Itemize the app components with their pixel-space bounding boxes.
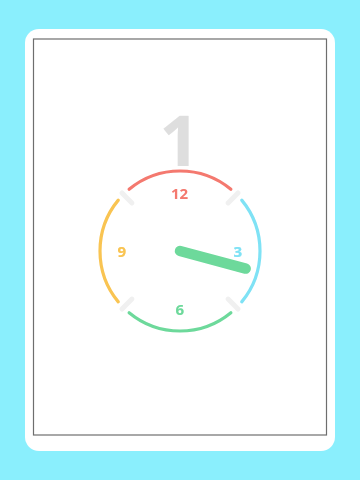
button[interactable]	[25, 29, 335, 451]
